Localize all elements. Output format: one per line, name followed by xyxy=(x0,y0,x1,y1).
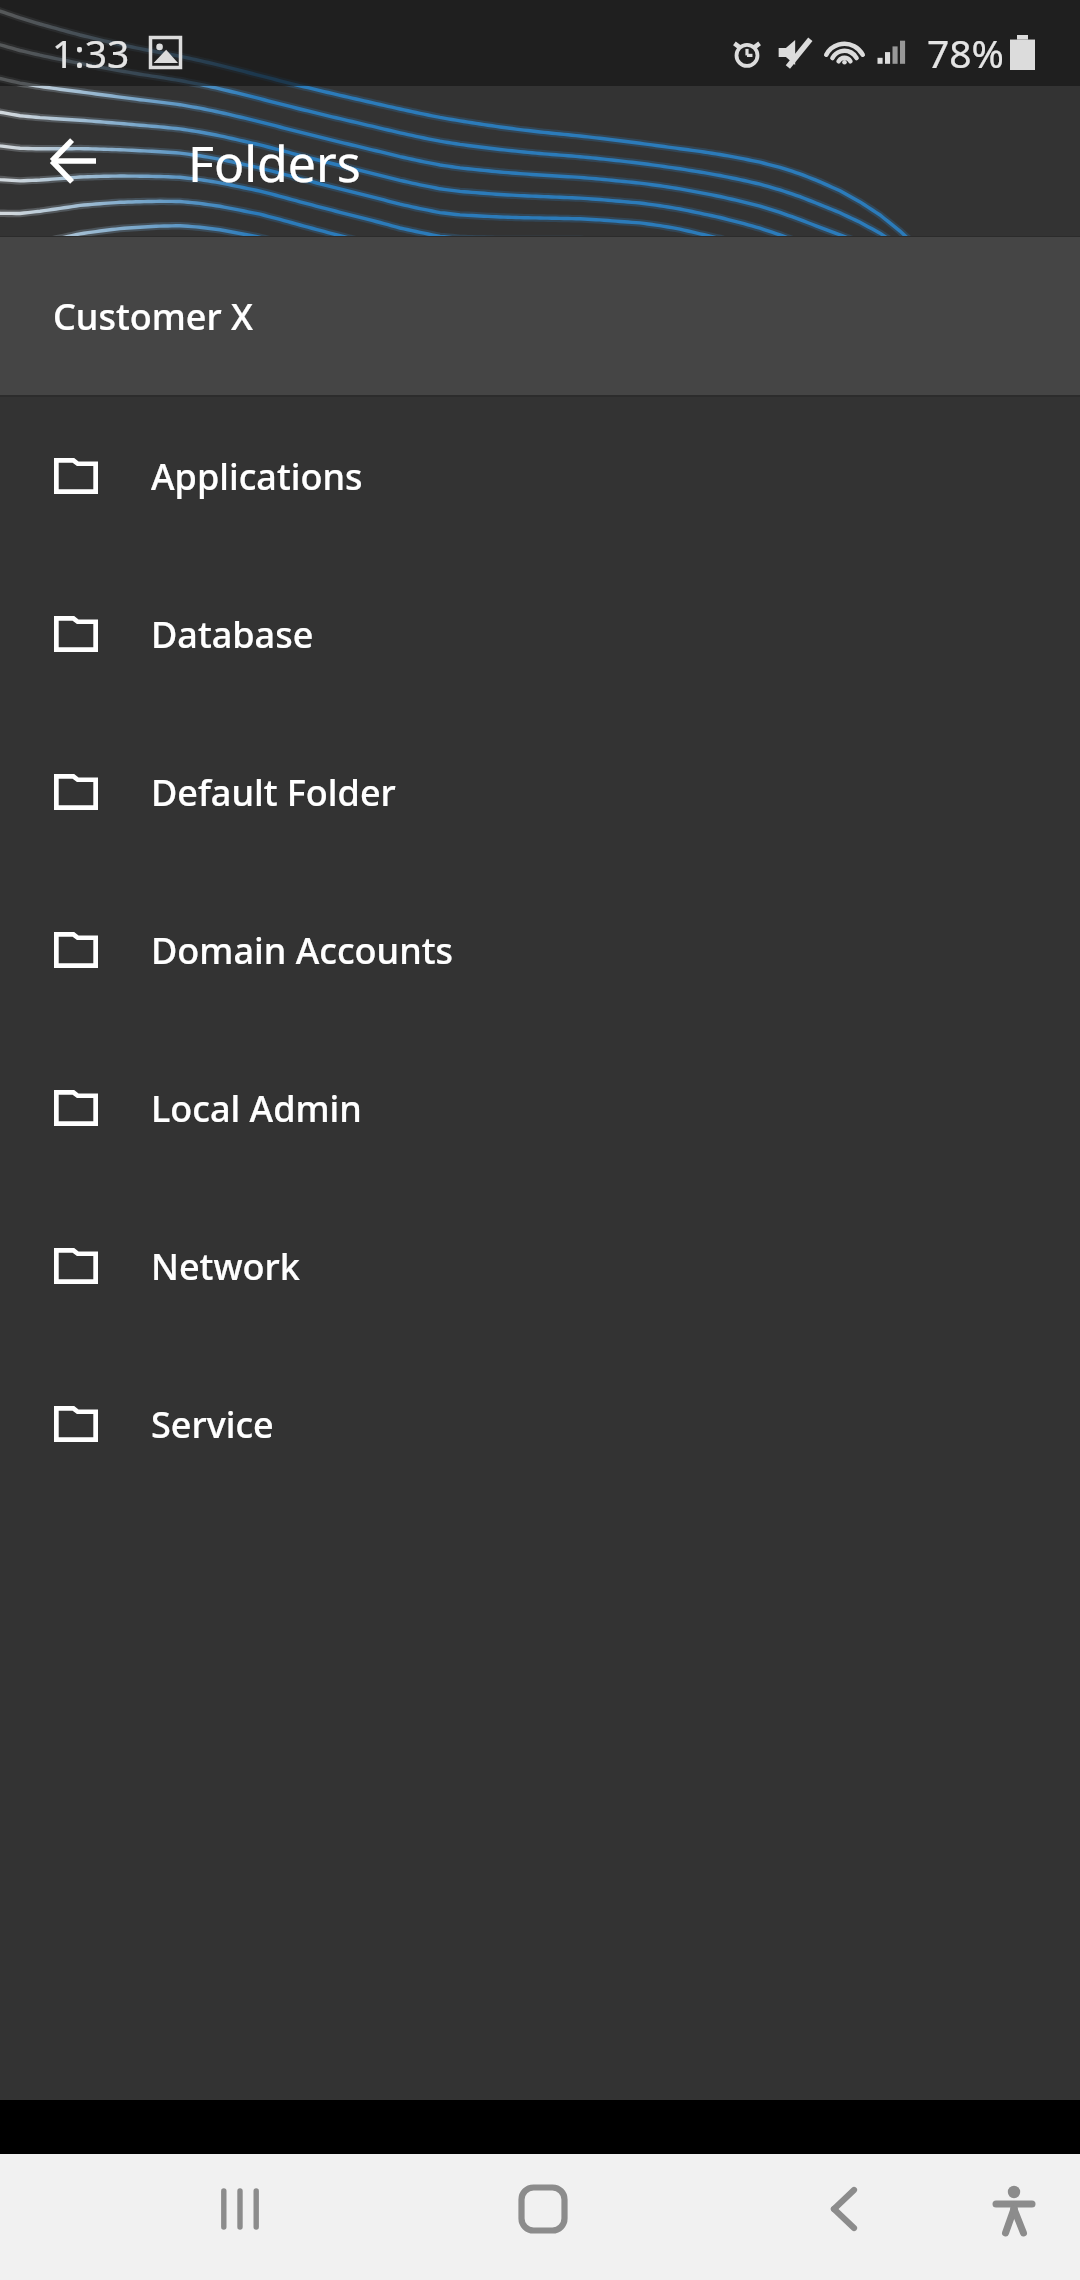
staticText: Default Folder xyxy=(151,768,396,817)
staticText: 1:33 xyxy=(52,26,130,79)
button[interactable]: Recents xyxy=(185,2154,295,2264)
staticText: Customer X xyxy=(53,292,254,341)
staticText: Folders xyxy=(188,129,361,197)
button[interactable]: Service xyxy=(0,1345,1080,1503)
button[interactable]: Navigate up xyxy=(24,112,122,210)
staticText: Domain Accounts xyxy=(151,926,454,975)
staticText: 78% xyxy=(927,26,1005,79)
staticText: Network xyxy=(151,1242,300,1291)
button[interactable]: Back xyxy=(789,2154,899,2264)
button[interactable]: Network xyxy=(0,1187,1080,1345)
button[interactable]: Home xyxy=(488,2154,598,2264)
button[interactable]: Default Folder xyxy=(0,713,1080,871)
staticText: Applications xyxy=(151,452,363,501)
button[interactable]: Accessibility xyxy=(959,2154,1069,2264)
staticText: Database xyxy=(151,610,314,659)
staticText: Local Admin xyxy=(151,1084,362,1133)
button[interactable]: Database xyxy=(0,555,1080,713)
button[interactable]: Local Admin xyxy=(0,1029,1080,1187)
button[interactable]: Applications xyxy=(0,397,1080,555)
staticText: Service xyxy=(151,1400,274,1449)
button[interactable]: Domain Accounts xyxy=(0,871,1080,1029)
